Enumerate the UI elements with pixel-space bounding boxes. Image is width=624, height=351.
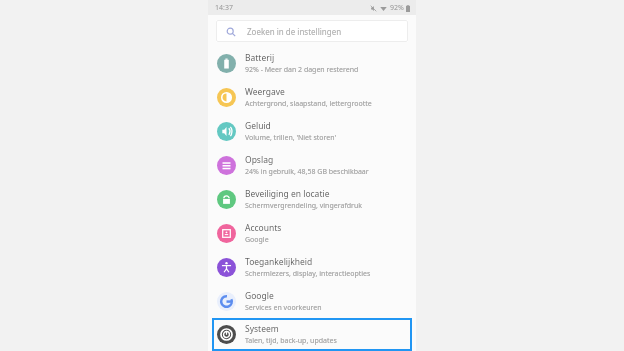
button[interactable]: Zoeken (216, 20, 408, 42)
staticText: Google (245, 290, 274, 302)
staticText: Achtergrond, slaapstand, lettergrootte (245, 99, 372, 109)
staticText: Batterij (245, 52, 275, 64)
button[interactable]: Accounts (208, 216, 416, 250)
button[interactable]: Opslag (208, 148, 416, 182)
button[interactable]: Google (208, 284, 416, 318)
button[interactable]: Beveiliging en locatie (208, 182, 416, 216)
staticText: Volume, trillen, 'Niet storen' (245, 133, 337, 143)
staticText: Talen, tijd, back-up, updates (245, 336, 337, 346)
staticText: Beveiliging en locatie (245, 188, 330, 200)
staticText: Schermvergrendeling, vingerafdruk (245, 201, 363, 211)
staticText: Google (245, 235, 269, 245)
button[interactable]: Systeem (212, 318, 412, 351)
other: Zoeken (226, 27, 236, 37)
staticText: Zoeken in de instellingen (247, 26, 342, 37)
staticText: Systeem (245, 323, 279, 335)
staticText: 92% - Meer dan 2 dagen resterend (245, 65, 359, 75)
button[interactable]: Batterij (208, 46, 416, 80)
button[interactable]: Weergave (208, 80, 416, 114)
staticText: Accounts (245, 222, 282, 234)
staticText: 92% (390, 3, 404, 13)
button[interactable]: Toegankelijkheid (208, 250, 416, 284)
staticText: Geluid (245, 120, 271, 132)
staticText: Opslag (245, 154, 274, 166)
staticText: 24% in gebruik, 48,58 GB beschikbaar (245, 167, 369, 177)
staticText: 14:37 (215, 3, 233, 13)
button[interactable]: Geluid (208, 114, 416, 148)
staticText: Weergave (245, 86, 285, 98)
staticText: Schermlezers, display, interactieopties (245, 269, 371, 279)
staticText: Toegankelijkheid (245, 256, 313, 268)
staticText: Services en voorkeuren (245, 303, 322, 313)
